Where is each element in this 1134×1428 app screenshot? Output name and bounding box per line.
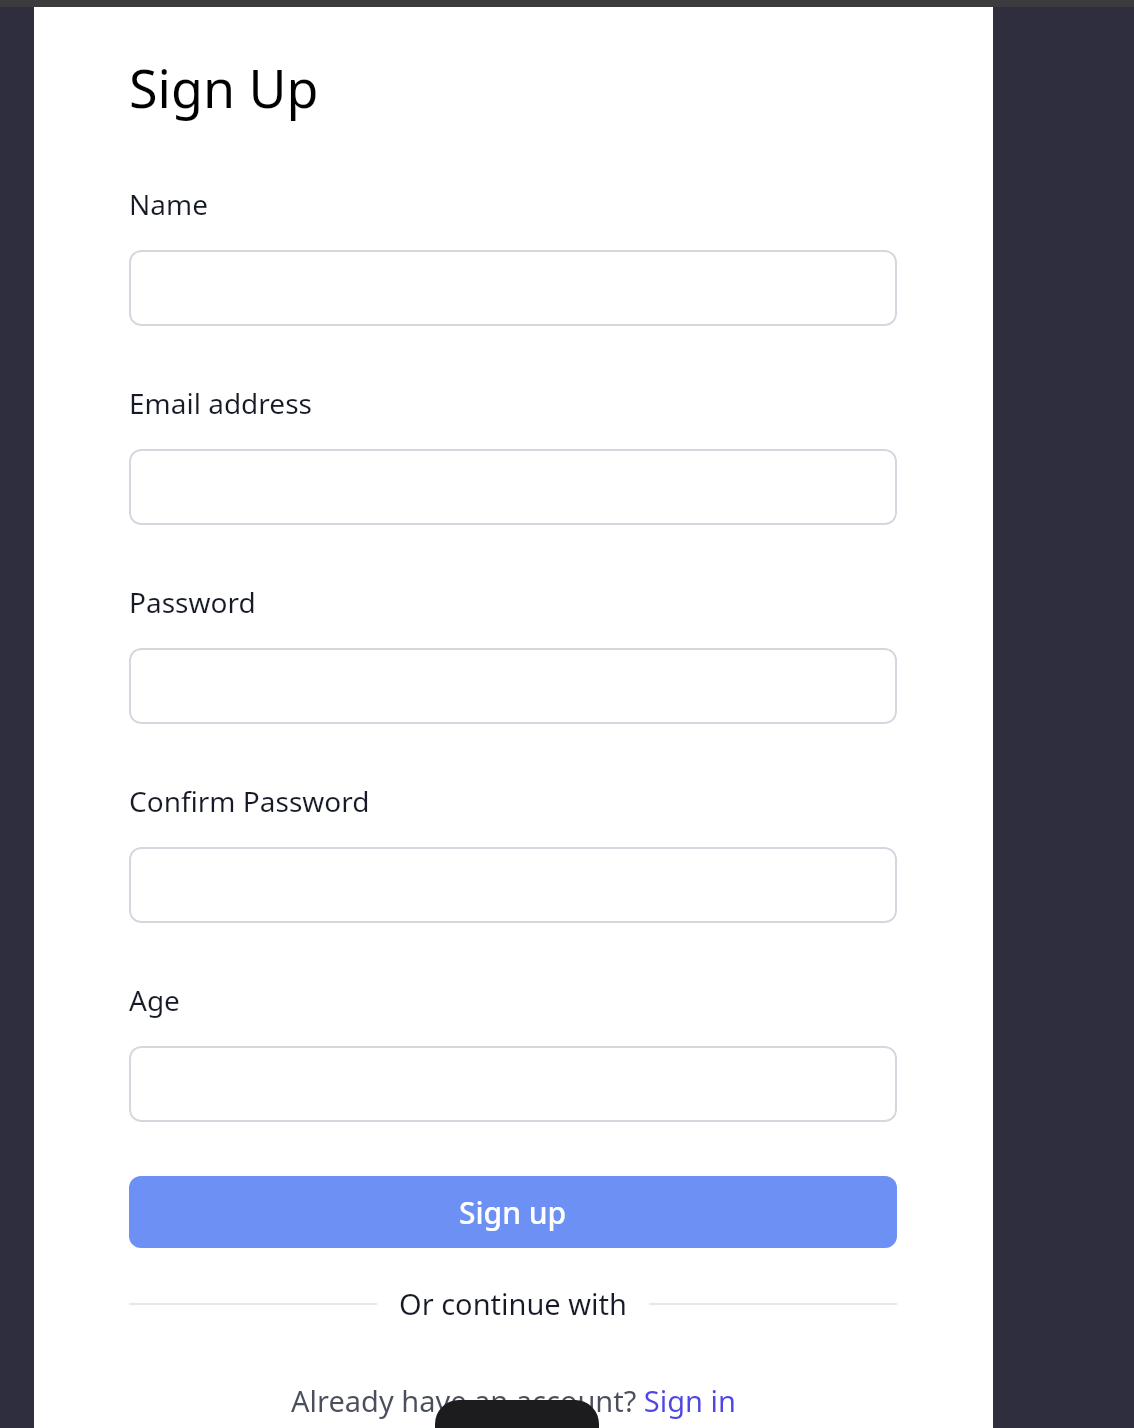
- staticText: Age: [129, 981, 180, 1019]
- staticText: Confirm Password: [129, 782, 370, 820]
- staticText: Or continue with: [399, 1284, 627, 1323]
- staticText: Password: [129, 583, 256, 621]
- staticText: Sign Up: [129, 52, 319, 123]
- button[interactable]: [129, 648, 897, 724]
- button[interactable]: [129, 250, 897, 326]
- staticText: Name: [129, 185, 208, 223]
- button[interactable]: [129, 1046, 897, 1122]
- button[interactable]: [129, 847, 897, 923]
- staticText: Email address: [129, 384, 312, 422]
- button[interactable]: Toolbar: [435, 1400, 599, 1428]
- button[interactable]: [129, 449, 897, 525]
- staticText: Already have an account? Sign in: [291, 1381, 736, 1420]
- button[interactable]: Already have an account? Sign in: [129, 1381, 897, 1420]
- button[interactable]: Sign up: [129, 1176, 897, 1248]
- staticText: Sign up: [459, 1192, 567, 1233]
